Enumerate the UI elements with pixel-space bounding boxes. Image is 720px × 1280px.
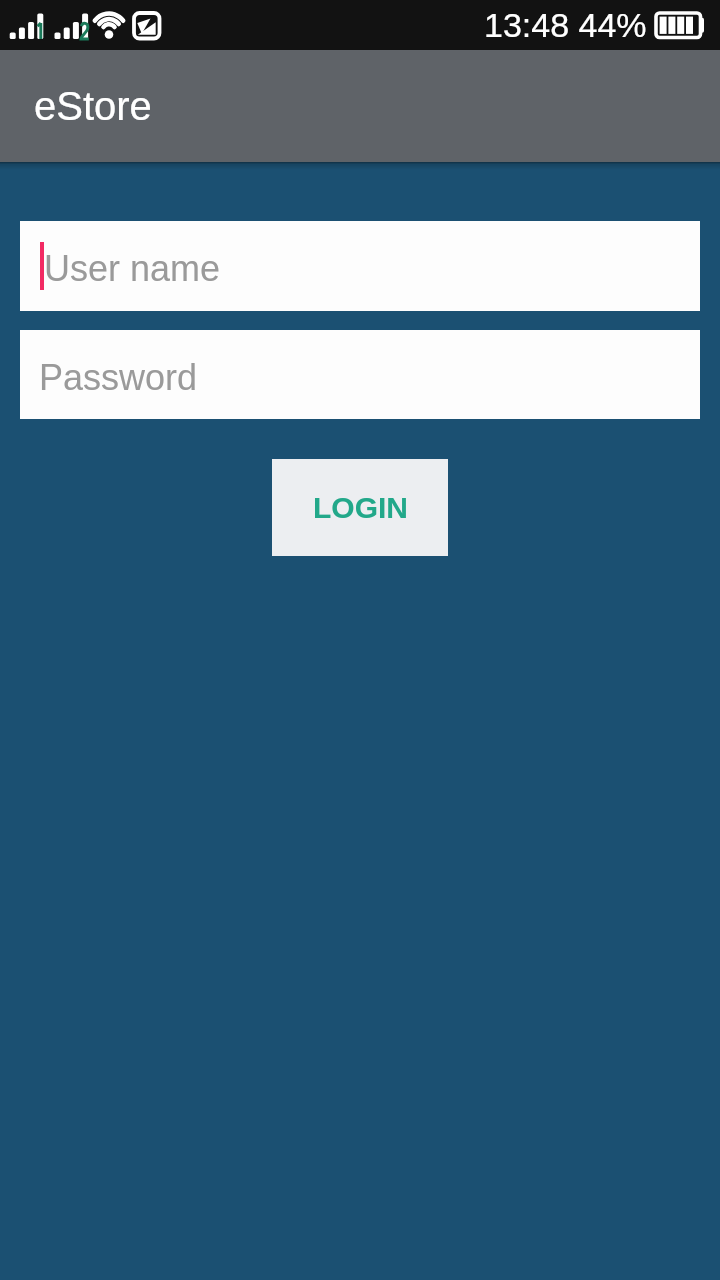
other: Signal, Wi-Fi, screenshot and battery st… xyxy=(0,0,720,50)
button[interactable]: LOGIN xyxy=(272,459,448,556)
button[interactable]: User name xyxy=(20,221,700,311)
staticText: Password xyxy=(39,357,198,397)
staticText: LOGIN xyxy=(313,491,408,525)
staticText: User name xyxy=(44,248,221,288)
staticText: 13:48 44% xyxy=(484,6,647,44)
button[interactable]: Password xyxy=(20,330,700,419)
staticText: eStore xyxy=(34,84,152,129)
